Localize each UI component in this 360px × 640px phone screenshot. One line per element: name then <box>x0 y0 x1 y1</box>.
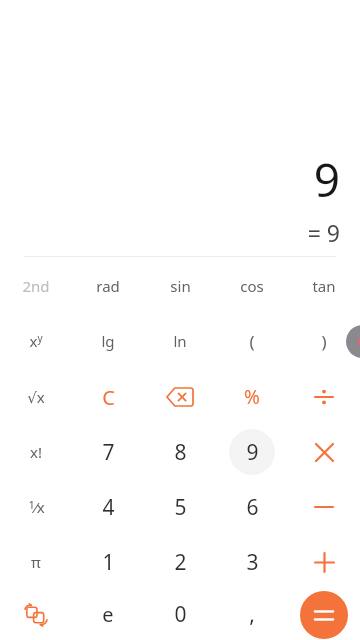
button[interactable]: 1 <box>72 535 144 589</box>
staticText: sin <box>170 276 191 296</box>
button[interactable]: Unit converter <box>0 589 72 640</box>
button[interactable]: 9 <box>216 425 288 479</box>
button[interactable]: 2nd <box>0 259 72 313</box>
button[interactable]: Plus <box>288 535 360 589</box>
button[interactable]: cos <box>216 259 288 313</box>
staticText: lg <box>101 331 115 351</box>
button[interactable]: C <box>72 370 144 424</box>
staticText: 2nd <box>22 276 50 296</box>
button[interactable]: ln <box>144 314 216 368</box>
staticText: rad <box>96 276 120 296</box>
staticText: cos <box>240 276 264 296</box>
staticText: C <box>102 384 115 411</box>
staticText: 0 <box>174 600 187 629</box>
button[interactable]: 6 <box>216 480 288 534</box>
staticText: tan <box>312 276 336 296</box>
staticText: 3 <box>246 548 259 577</box>
button[interactable]: 1⁄x <box>0 480 72 534</box>
staticText: ) <box>321 330 327 353</box>
staticText: 7 <box>102 438 115 467</box>
button[interactable]: ( <box>216 314 288 368</box>
staticText: 2 <box>174 548 187 577</box>
button[interactable]: sin <box>144 259 216 313</box>
button[interactable]: xy <box>0 314 72 368</box>
button[interactable]: % <box>216 370 288 424</box>
staticText: 8 <box>174 438 187 467</box>
button[interactable]: Minus <box>288 480 360 534</box>
staticText: √x <box>27 387 45 407</box>
button[interactable]: x! <box>0 425 72 479</box>
staticText: 9 <box>313 148 340 211</box>
button[interactable]: 8 <box>144 425 216 479</box>
button[interactable]: tan <box>288 259 360 313</box>
staticText: 1 <box>102 548 115 577</box>
staticText: ( <box>249 330 255 353</box>
staticText: e <box>102 601 114 628</box>
button[interactable]: Divide <box>288 370 360 424</box>
button[interactable]: 4 <box>72 480 144 534</box>
button[interactable]: 5 <box>144 480 216 534</box>
staticText: % <box>244 384 260 410</box>
button[interactable]: 3 <box>216 535 288 589</box>
button[interactable]: √x <box>0 370 72 424</box>
button[interactable]: π <box>0 535 72 589</box>
button[interactable]: Multiply <box>288 425 360 479</box>
button[interactable]: Backspace <box>144 370 216 424</box>
staticText: xy <box>29 331 43 351</box>
button[interactable]: rad <box>72 259 144 313</box>
staticText: 5 <box>174 493 187 522</box>
button[interactable]: e <box>72 589 144 640</box>
staticText: = 9 <box>307 217 340 248</box>
button[interactable]: 2 <box>144 535 216 589</box>
button[interactable]: 7 <box>72 425 144 479</box>
staticText: x! <box>30 442 42 462</box>
button[interactable]: Equals <box>288 589 360 640</box>
staticText: 4 <box>102 493 115 522</box>
staticText: 9 <box>246 438 259 467</box>
button[interactable]: ) <box>288 314 360 368</box>
button[interactable]: , <box>216 589 288 640</box>
staticText: 1⁄x <box>28 497 45 517</box>
staticText: , <box>249 600 255 629</box>
button[interactable]: 0 <box>144 589 216 640</box>
staticText: ln <box>173 331 187 351</box>
button[interactable]: lg <box>72 314 144 368</box>
staticText: 6 <box>246 493 259 522</box>
staticText: π <box>31 552 41 572</box>
